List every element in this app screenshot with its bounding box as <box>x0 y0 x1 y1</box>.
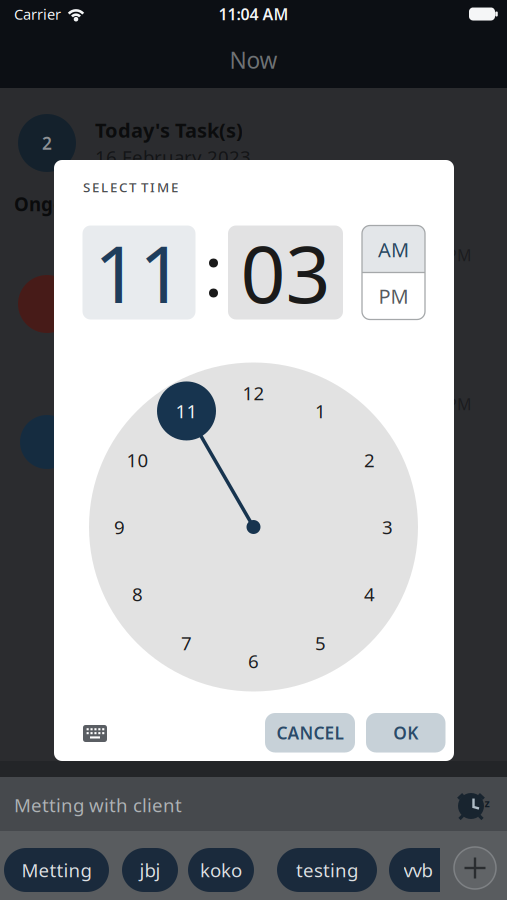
staticText: z <box>484 796 489 810</box>
staticText: testing <box>296 858 358 882</box>
button[interactable]: PM <box>362 272 425 319</box>
staticText: 12 <box>242 381 264 405</box>
staticText: 11:04 AM <box>218 3 288 25</box>
button[interactable]: AM <box>362 225 425 272</box>
staticText: 2 <box>364 448 375 472</box>
button[interactable]: 11 <box>82 225 195 319</box>
button[interactable]: Set reminder <box>454 787 498 823</box>
button[interactable]: Metting <box>4 848 109 892</box>
staticText: 2 <box>42 131 52 154</box>
staticText: 3 <box>382 515 393 539</box>
button[interactable]: koko <box>188 848 254 892</box>
staticText: 5 <box>315 631 326 655</box>
staticText: Carrier <box>14 4 61 24</box>
staticText: Today's Task(s) <box>95 117 243 143</box>
button[interactable]: OK <box>366 713 445 752</box>
button[interactable]: vvb <box>389 848 440 892</box>
staticText: koko <box>200 858 242 882</box>
staticText: S E L E C T T I M E <box>83 178 178 196</box>
button[interactable]: jbj <box>122 848 178 892</box>
button[interactable]: 03 <box>228 225 343 319</box>
staticText: 1 <box>315 399 326 423</box>
staticText: Ongoing <box>14 192 95 216</box>
button[interactable]: testing <box>277 848 377 892</box>
staticText: vvb <box>403 858 432 882</box>
staticText: 8 <box>132 582 143 606</box>
button[interactable]: Switch to text input <box>83 725 107 742</box>
staticText: PM <box>378 283 408 309</box>
staticText: 11 <box>94 220 184 325</box>
staticText: Metting with client <box>14 793 182 817</box>
staticText: CANCEL <box>276 721 343 744</box>
button[interactable]: CANCEL <box>265 713 355 752</box>
staticText: jbj <box>139 858 160 882</box>
staticText: 9 <box>114 515 125 539</box>
staticText: Metting <box>21 858 91 882</box>
staticText: 8:00 PM <box>412 393 472 415</box>
staticText: OK <box>393 721 418 744</box>
staticText: AM <box>378 236 409 263</box>
staticText: 11 <box>175 399 197 423</box>
staticText: 10 <box>126 448 148 472</box>
staticText: 7:00 PM <box>412 244 472 266</box>
button[interactable]: Add tag <box>454 847 496 889</box>
staticText: 4 <box>364 582 375 606</box>
staticText: 7 <box>181 631 192 655</box>
staticText: 03 <box>240 220 330 325</box>
staticText: 16 February 2023 <box>95 145 251 169</box>
staticText: 6 <box>248 649 259 673</box>
staticText: Now <box>229 45 277 75</box>
